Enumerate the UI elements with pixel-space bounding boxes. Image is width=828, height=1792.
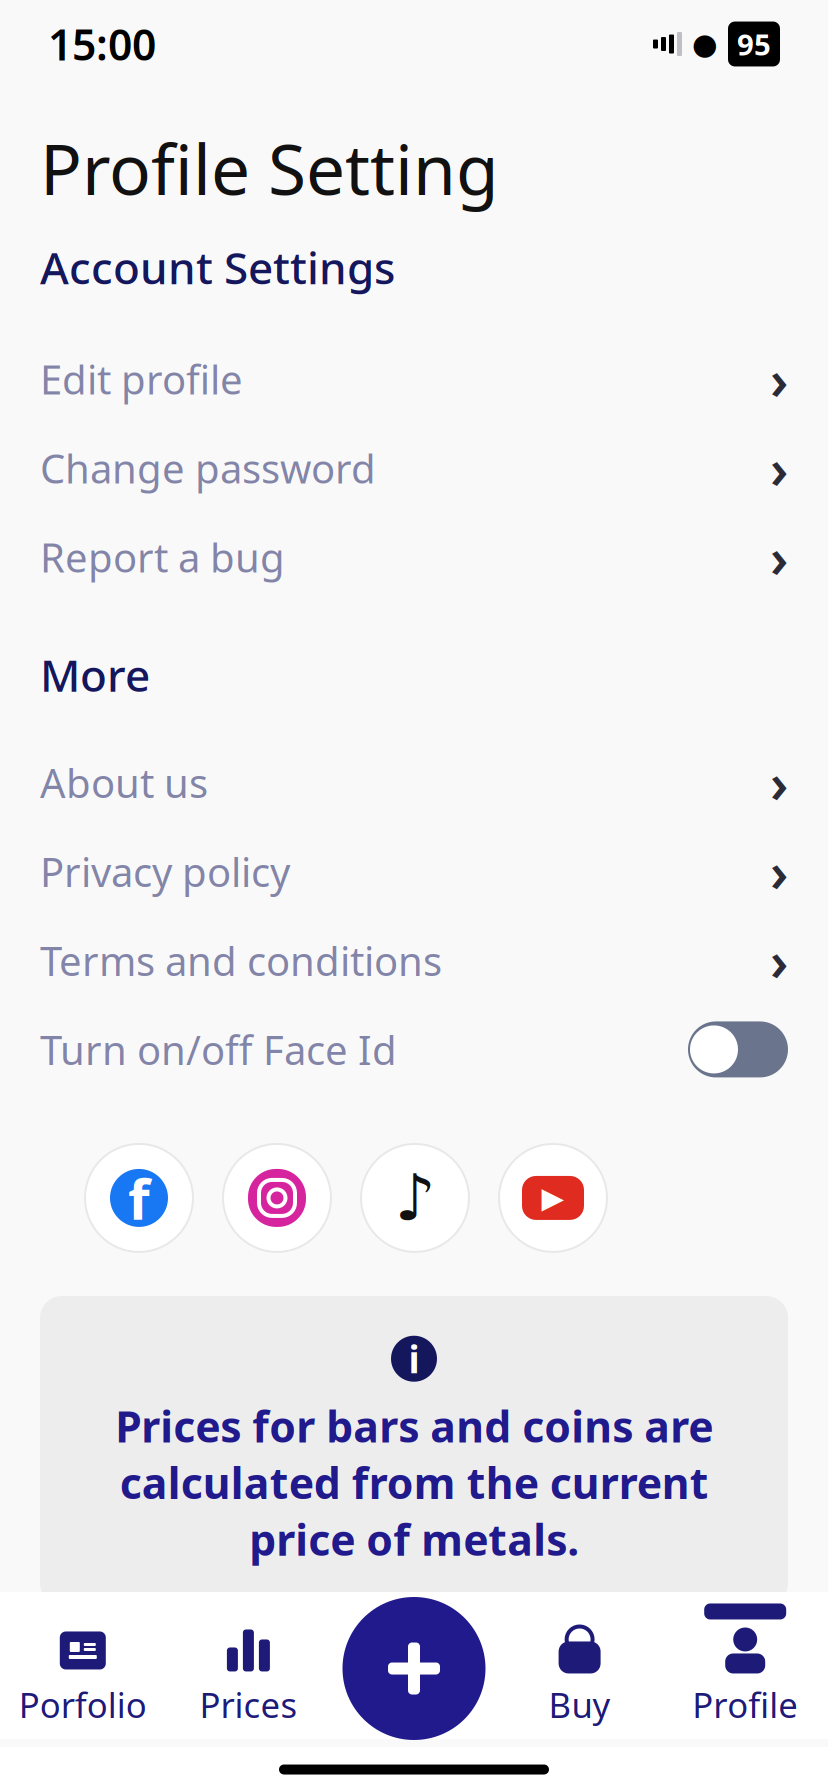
button[interactable]: Facebook bbox=[85, 1144, 193, 1252]
staticText: Prices bbox=[199, 1681, 297, 1727]
button[interactable]: Buy bbox=[497, 1603, 662, 1727]
staticText: › bbox=[770, 522, 788, 592]
staticText: › bbox=[770, 925, 788, 996]
staticText: Profile Setting bbox=[40, 122, 499, 214]
staticText: › bbox=[770, 344, 788, 414]
button[interactable]: Add bbox=[342, 1597, 485, 1740]
button[interactable]: Terms and conditions bbox=[0, 916, 828, 1005]
button[interactable]: Report a bug bbox=[0, 512, 828, 601]
button[interactable]: Edit profile bbox=[0, 334, 828, 423]
staticText: › bbox=[770, 433, 788, 503]
staticText: Prices for bars and coins are calculated… bbox=[115, 1397, 713, 1567]
button[interactable]: Privacy policy bbox=[0, 827, 828, 916]
staticText: Change password bbox=[40, 441, 376, 494]
staticText: More bbox=[40, 645, 150, 704]
staticText: Report a bug bbox=[40, 530, 285, 583]
button[interactable]: Instagram bbox=[223, 1144, 331, 1252]
button[interactable]: Profile bbox=[662, 1603, 828, 1727]
staticText: ● bbox=[692, 27, 718, 61]
staticText: 15:00 bbox=[48, 16, 156, 72]
button[interactable]: Change password bbox=[0, 423, 828, 512]
button[interactable]: About us bbox=[0, 738, 828, 827]
staticText: Privacy policy bbox=[40, 845, 290, 898]
staticText: 95 bbox=[737, 24, 771, 63]
staticText: Terms and conditions bbox=[40, 934, 442, 987]
staticText: Account Settings bbox=[40, 238, 395, 296]
button[interactable]: TikTok bbox=[361, 1144, 469, 1252]
button[interactable]: YouTube bbox=[499, 1144, 607, 1252]
staticText: ♪ bbox=[394, 1162, 435, 1234]
staticText: ▶ bbox=[541, 1181, 564, 1215]
staticText: Porfolio bbox=[19, 1681, 147, 1727]
button[interactable]: Porfolio bbox=[0, 1603, 166, 1727]
staticText: About us bbox=[40, 756, 208, 809]
staticText: i bbox=[408, 1334, 419, 1383]
button[interactable]: Prices bbox=[166, 1603, 331, 1727]
staticText: Turn on/off Face Id bbox=[40, 1023, 397, 1076]
staticText: Buy bbox=[549, 1681, 611, 1727]
staticText: › bbox=[770, 747, 788, 818]
button[interactable]: Turn on/off Face Id bbox=[0, 1005, 828, 1094]
staticText: Edit profile bbox=[40, 352, 243, 405]
staticText: Profile bbox=[692, 1681, 798, 1727]
staticText: › bbox=[770, 836, 788, 907]
staticText: f bbox=[128, 1161, 150, 1235]
